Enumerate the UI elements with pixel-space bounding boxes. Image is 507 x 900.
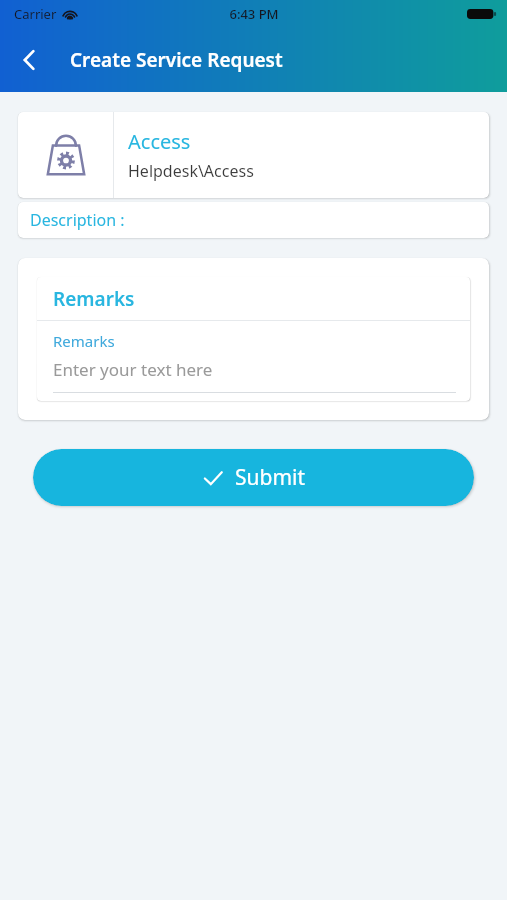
staticText: Carrier bbox=[14, 5, 57, 23]
button[interactable]: Description : bbox=[18, 202, 489, 238]
staticText: Create Service Request bbox=[70, 47, 283, 73]
staticText: Submit bbox=[235, 463, 306, 492]
staticText: Remarks bbox=[53, 286, 135, 312]
staticText: Enter your text here bbox=[53, 358, 213, 381]
staticText: Helpdesk\Access bbox=[128, 160, 254, 182]
button[interactable]: Back bbox=[8, 38, 52, 82]
staticText: Description : bbox=[30, 209, 125, 231]
button[interactable]: Access bbox=[18, 112, 489, 198]
button[interactable]: Submit bbox=[33, 449, 474, 506]
button[interactable]: Remarks bbox=[53, 331, 456, 393]
staticText: Access bbox=[128, 128, 191, 155]
staticText: 6:43 PM bbox=[229, 5, 279, 23]
staticText: Remarks bbox=[53, 331, 115, 351]
